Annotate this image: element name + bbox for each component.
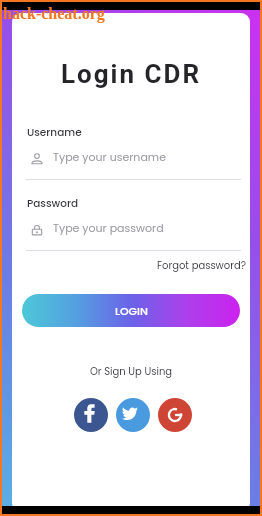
other: Password <box>31 224 43 236</box>
staticText: Username <box>27 125 82 140</box>
staticText: Password <box>27 196 79 211</box>
button[interactable]: Forgot password? <box>157 258 246 272</box>
other: Username <box>31 153 43 165</box>
staticText: Or Sign Up Using <box>0 364 262 378</box>
staticText: Type your password <box>53 220 164 235</box>
button[interactable]: Sign up with Google <box>158 398 192 432</box>
button[interactable]: LOGIN <box>22 294 240 327</box>
staticText: Login CDR <box>0 59 262 89</box>
button[interactable]: Sign up with Twitter <box>116 398 150 432</box>
staticText: LOGIN <box>115 303 148 318</box>
staticText: Type your username <box>53 149 166 164</box>
button[interactable]: Sign up with Facebook <box>74 398 108 432</box>
staticText: hack-cheat.org <box>3 5 105 23</box>
